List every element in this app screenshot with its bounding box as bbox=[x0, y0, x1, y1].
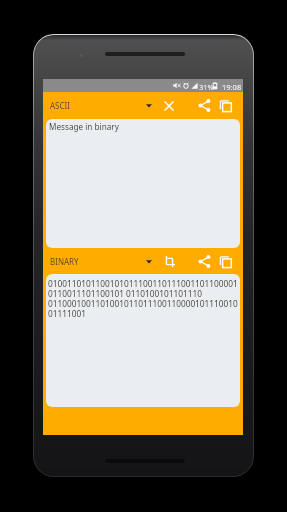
button[interactable]: Share bbox=[196, 249, 212, 274]
staticText: 19:08 bbox=[222, 82, 242, 92]
button[interactable]: Copy bbox=[218, 249, 234, 274]
staticText: BINARY bbox=[50, 256, 79, 267]
staticText: ASCII bbox=[50, 100, 70, 111]
button[interactable]: Share bbox=[196, 92, 212, 119]
button[interactable]: Close bbox=[161, 92, 177, 119]
staticText: Message in binary bbox=[49, 121, 119, 132]
staticText: 0100110101100101011100110111001101100001… bbox=[48, 278, 240, 319]
button[interactable]: ASCII bbox=[47, 92, 154, 119]
button[interactable]: BINARY bbox=[47, 249, 154, 274]
staticText: 31% bbox=[199, 82, 214, 92]
button[interactable]: Crop bbox=[161, 249, 177, 274]
button[interactable]: Copy bbox=[218, 92, 234, 119]
